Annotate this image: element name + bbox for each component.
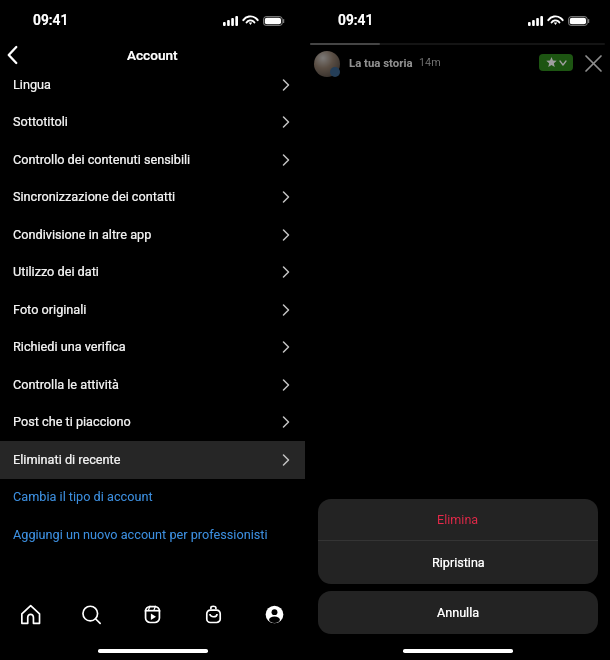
button[interactable]: Cambia il tipo di account <box>0 478 305 516</box>
button[interactable]: Sottotitoli <box>0 103 305 141</box>
button[interactable]: Shop <box>183 597 244 631</box>
button[interactable]: Condivisione in altre app <box>0 216 305 254</box>
staticText: Ripristina <box>432 555 485 570</box>
staticText: Controllo dei contenuti sensibili <box>13 152 191 167</box>
staticText: Post che ti piacciono <box>13 414 131 429</box>
staticText: 09:41 <box>33 12 69 28</box>
staticText: Lingua <box>13 77 51 92</box>
button[interactable]: Sincronizzazione dei contatti <box>0 178 305 216</box>
button[interactable]: Home <box>0 597 61 631</box>
staticText: Condivisione in altre app <box>13 227 152 242</box>
staticText: 14m <box>419 56 441 69</box>
button[interactable]: Annulla <box>318 591 598 634</box>
button[interactable]: Search <box>61 597 122 631</box>
button[interactable]: Controllo dei contenuti sensibili <box>0 141 305 179</box>
button[interactable]: Post che ti piacciono <box>0 403 305 441</box>
staticText: Aggiungi un nuovo account per profession… <box>13 527 268 542</box>
button[interactable]: Profile <box>244 597 305 631</box>
button[interactable]: Aggiungi un nuovo account per profession… <box>0 516 305 554</box>
staticText: Richiedi una verifica <box>13 339 126 354</box>
button[interactable]: Foto originali <box>0 291 305 329</box>
staticText: 09:41 <box>338 12 374 28</box>
button[interactable]: Utilizzo dei dati <box>0 253 305 291</box>
button[interactable]: Close <box>582 52 605 75</box>
staticText: Utilizzo dei dati <box>13 264 99 279</box>
button[interactable]: Ripristina <box>318 541 598 584</box>
staticText: Elimina <box>437 512 479 527</box>
button[interactable]: Lingua <box>0 66 305 104</box>
staticText: Account <box>127 47 178 63</box>
staticText: Foto originali <box>13 302 87 317</box>
staticText: Cambia il tipo di account <box>13 489 153 504</box>
staticText: La tua storia <box>349 56 413 69</box>
staticText: Sottotitoli <box>13 114 68 129</box>
button[interactable]: Close friends <box>539 54 573 71</box>
button[interactable]: Back <box>0 40 27 70</box>
button[interactable]: Elimina <box>318 499 598 540</box>
button[interactable]: Controlla le attività <box>0 366 305 404</box>
button[interactable]: Richiedi una verifica <box>0 328 305 366</box>
staticText: Eliminati di recente <box>13 452 121 467</box>
staticText: Annulla <box>437 605 480 620</box>
staticText: Controlla le attività <box>13 377 119 392</box>
button[interactable]: Eliminati di recente <box>0 441 305 479</box>
staticText: Sincronizzazione dei contatti <box>13 189 176 204</box>
button[interactable]: Reels <box>122 597 183 631</box>
